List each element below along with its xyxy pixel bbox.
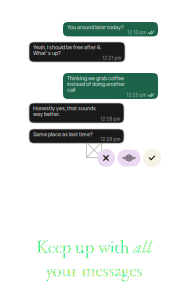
staticText: call	[67, 87, 75, 93]
button[interactable]: Honestly yes, that sounds	[29, 103, 124, 123]
staticText: your messages	[45, 258, 142, 282]
button[interactable]: You around later today?	[63, 22, 158, 36]
staticText: What's up?	[33, 50, 61, 56]
image	[86, 142, 102, 158]
staticText: instead of doing another	[67, 81, 125, 87]
staticText: 12:10 pm	[127, 30, 146, 35]
button[interactable]: Cancel	[97, 149, 115, 167]
button[interactable]: Thinking we grab coffee	[63, 73, 158, 99]
staticText: 12:28 pm	[100, 117, 120, 122]
button[interactable]: Same place as last time?	[29, 129, 124, 143]
button[interactable]: Yeah, I should be free after 6.	[29, 42, 125, 62]
staticText: You around later today?	[67, 24, 124, 30]
staticText: 12:28 pm	[100, 137, 120, 142]
staticText: Thinking we grab coffee	[67, 75, 124, 81]
staticText: 12:21 pm	[102, 56, 121, 61]
staticText: 12:25 pm	[126, 93, 146, 97]
staticText: Honestly yes, that sounds	[33, 105, 96, 111]
button[interactable]: Voice message	[117, 149, 140, 166]
staticText: Yeah, I should be free after 6.	[33, 44, 101, 50]
staticText: Keep up with all	[36, 235, 152, 258]
button[interactable]: Send	[143, 149, 161, 167]
staticText: Same place as last time?	[33, 131, 93, 137]
staticText: way better.	[33, 111, 60, 117]
